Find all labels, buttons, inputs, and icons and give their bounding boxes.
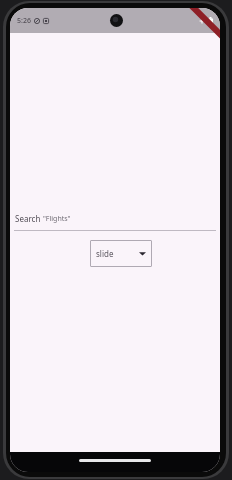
staticText: 5:26 — [17, 16, 31, 26]
other: Open dropdown — [139, 251, 146, 256]
other: Home gesture bar — [79, 459, 151, 462]
button[interactable]: Search — [10, 211, 220, 227]
staticText: slide — [96, 248, 114, 259]
button[interactable]: slide — [90, 240, 152, 267]
staticText: Search — [15, 213, 41, 224]
staticText: "Flights" — [43, 214, 71, 224]
